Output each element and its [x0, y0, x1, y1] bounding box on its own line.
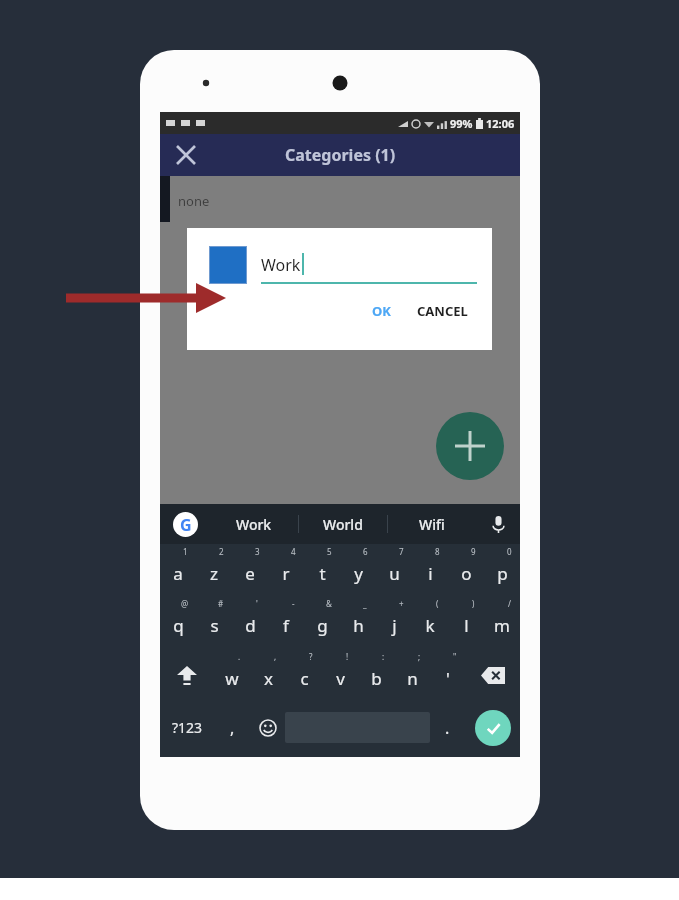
button[interactable]: Backspace	[466, 649, 520, 702]
button[interactable]: Done	[475, 710, 511, 746]
staticText: 9	[471, 546, 476, 557]
button[interactable]: &	[304, 596, 340, 649]
staticText: Wifi	[419, 515, 445, 534]
button[interactable]: 9	[448, 544, 484, 596]
staticText: j	[392, 614, 397, 637]
button[interactable]: ,	[215, 702, 250, 753]
staticText: .	[238, 651, 241, 662]
staticText: n	[407, 667, 418, 690]
staticText: 5	[327, 546, 332, 557]
button[interactable]: Wifi	[388, 504, 476, 544]
staticText: ;	[418, 651, 421, 662]
button[interactable]: "	[430, 649, 466, 702]
staticText: r	[282, 562, 290, 585]
staticText: w	[225, 667, 239, 690]
staticText: CANCEL	[417, 302, 468, 320]
staticText: +	[399, 598, 404, 609]
staticText: 6	[363, 546, 368, 557]
button[interactable]: 8	[412, 544, 448, 596]
button[interactable]: .	[430, 702, 465, 753]
staticText: "	[453, 651, 457, 662]
button[interactable]: World	[299, 504, 387, 544]
staticText: q	[173, 614, 184, 637]
staticText: -	[292, 598, 295, 609]
staticText: Categories (1)	[285, 144, 396, 166]
staticText: !	[346, 651, 349, 662]
button[interactable]: @	[160, 596, 196, 649]
button[interactable]: ?	[286, 649, 322, 702]
button[interactable]: )	[448, 596, 484, 649]
button[interactable]: -	[268, 596, 304, 649]
button[interactable]: Work	[210, 504, 298, 544]
button[interactable]: 2	[196, 544, 232, 596]
button[interactable]: 0	[484, 544, 520, 596]
button[interactable]: +	[376, 596, 412, 649]
button[interactable]: ,	[250, 649, 286, 702]
staticText: 12:06	[486, 116, 515, 131]
button[interactable]: Pick colour	[209, 246, 247, 284]
button[interactable]: Emoji	[250, 702, 285, 753]
staticText: 1	[183, 546, 188, 557]
button[interactable]: .	[214, 649, 250, 702]
staticText: t	[319, 562, 326, 585]
staticText: _	[363, 598, 367, 609]
button[interactable]: Close	[168, 137, 204, 173]
staticText: Work	[236, 515, 272, 534]
staticText: f	[283, 614, 289, 637]
staticText: 2	[219, 546, 224, 557]
staticText: g	[317, 614, 328, 637]
button[interactable]: #	[196, 596, 232, 649]
staticText: ,	[230, 717, 235, 739]
staticText: d	[245, 614, 256, 637]
button[interactable]: ;	[394, 649, 430, 702]
button[interactable]: 7	[376, 544, 412, 596]
button[interactable]: OK	[372, 302, 391, 320]
staticText: k	[425, 614, 435, 637]
staticText: 7	[399, 546, 404, 557]
staticText: )	[472, 598, 475, 609]
button[interactable]: Shift	[160, 649, 214, 702]
staticText: G	[180, 514, 192, 536]
staticText: /	[508, 598, 511, 609]
button[interactable]: 1	[160, 544, 196, 596]
staticText: l	[464, 614, 469, 637]
button[interactable]: _	[340, 596, 376, 649]
button[interactable]: 6	[340, 544, 376, 596]
staticText: World	[323, 515, 363, 534]
button[interactable]: /	[484, 596, 520, 649]
staticText: 4	[291, 546, 296, 557]
button[interactable]: Add category	[436, 412, 504, 480]
staticText: s	[210, 614, 219, 637]
button[interactable]: 5	[304, 544, 340, 596]
button[interactable]: 3	[232, 544, 268, 596]
button[interactable]: '	[232, 596, 268, 649]
button[interactable]: ?123	[160, 702, 215, 753]
staticText: 0	[507, 546, 512, 557]
staticText: h	[353, 614, 364, 637]
button[interactable]: 4	[268, 544, 304, 596]
button[interactable]: Voice input	[476, 504, 520, 544]
button[interactable]: Google	[160, 504, 210, 544]
staticText: 8	[435, 546, 440, 557]
staticText: b	[371, 667, 382, 690]
staticText: p	[497, 562, 508, 585]
button[interactable]: !	[322, 649, 358, 702]
staticText: u	[389, 562, 400, 585]
staticText: o	[461, 562, 472, 585]
staticText: '	[446, 667, 450, 690]
button[interactable]: (	[412, 596, 448, 649]
staticText: ,	[274, 651, 277, 662]
button[interactable]: :	[358, 649, 394, 702]
staticText: ?123	[172, 718, 203, 737]
staticText: @	[181, 598, 189, 609]
staticText: .	[445, 717, 450, 739]
staticText: z	[210, 562, 218, 585]
staticText: x	[264, 667, 273, 690]
staticText: a	[173, 562, 183, 585]
button[interactable]: CANCEL	[417, 302, 468, 320]
staticText: ?	[309, 651, 313, 662]
staticText: none	[178, 192, 210, 210]
staticText: OK	[372, 302, 391, 320]
staticText: &	[326, 598, 332, 609]
